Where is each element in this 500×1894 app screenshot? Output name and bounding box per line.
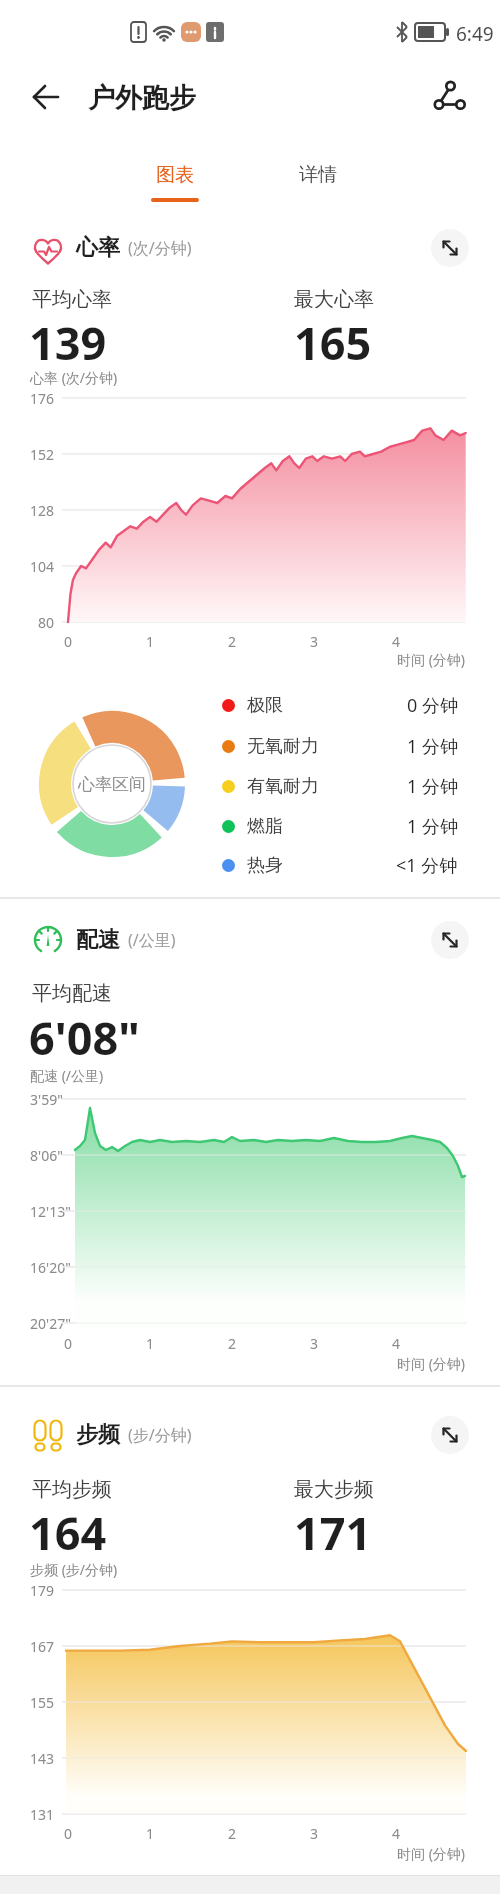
- staticText: 4: [392, 1334, 401, 1353]
- staticText: 176: [30, 389, 55, 408]
- staticText: 配速: [76, 926, 120, 954]
- staticText: 155: [30, 1693, 55, 1712]
- staticText: 6:49: [456, 21, 494, 47]
- staticText: 有氧耐力: [247, 775, 319, 798]
- staticText: 0: [64, 1334, 73, 1353]
- staticText: 时间 (分钟): [397, 1844, 466, 1863]
- staticText: (步/分钟): [128, 1424, 192, 1446]
- staticText: 4: [392, 1824, 401, 1843]
- staticText: 1: [146, 1334, 155, 1353]
- staticText: 0: [64, 1824, 73, 1843]
- staticText: <1 分钟: [396, 853, 458, 878]
- staticText: 步频 (步/分钟): [30, 1560, 118, 1579]
- staticText: 1 分钟: [407, 814, 458, 839]
- staticText: 1: [146, 632, 155, 651]
- staticText: (次/分钟): [128, 237, 192, 259]
- staticText: 详情: [299, 163, 337, 187]
- staticText: 139: [29, 312, 107, 373]
- staticText: 步频: [76, 1421, 120, 1449]
- staticText: 心率: [76, 234, 120, 262]
- staticText: 时间 (分钟): [397, 1354, 466, 1373]
- staticText: 104: [30, 557, 55, 576]
- staticText: (/公里): [128, 929, 176, 951]
- staticText: 165: [294, 312, 372, 373]
- staticText: 3'59": [30, 1090, 63, 1109]
- staticText: 167: [30, 1637, 55, 1656]
- button[interactable]: [431, 229, 469, 267]
- staticText: 心率区间: [78, 774, 146, 795]
- button[interactable]: [428, 76, 472, 120]
- button[interactable]: 热身: [222, 851, 458, 879]
- staticText: 152: [30, 445, 55, 464]
- staticText: 1: [146, 1824, 155, 1843]
- staticText: 平均步频: [32, 1477, 112, 1502]
- staticText: 心率 (次/分钟): [30, 368, 118, 387]
- staticText: 平均配速: [32, 981, 112, 1006]
- staticText: 131: [30, 1805, 55, 1824]
- staticText: 16'20": [30, 1258, 71, 1277]
- button[interactable]: 无氧耐力: [222, 732, 458, 760]
- button[interactable]: 极限: [222, 691, 458, 719]
- staticText: 171: [294, 1502, 372, 1563]
- staticText: 最大心率: [294, 287, 374, 312]
- staticText: 4: [392, 632, 401, 651]
- staticText: 3: [310, 1334, 319, 1353]
- staticText: 2: [228, 1334, 237, 1353]
- staticText: 燃脂: [247, 815, 283, 838]
- staticText: 20'27": [30, 1314, 71, 1333]
- staticText: 12'13": [30, 1202, 71, 1221]
- staticText: 时间 (分钟): [397, 650, 466, 669]
- staticText: 6'08": [29, 1007, 140, 1068]
- staticText: 143: [30, 1749, 55, 1768]
- staticText: 1 分钟: [407, 734, 458, 759]
- staticText: 8'06": [30, 1146, 63, 1165]
- button[interactable]: [431, 1416, 469, 1454]
- staticText: 平均心率: [32, 287, 112, 312]
- staticText: 2: [228, 632, 237, 651]
- button[interactable]: 燃脂: [222, 812, 458, 840]
- staticText: 0 分钟: [407, 693, 458, 718]
- staticText: 0: [64, 632, 73, 651]
- staticText: 3: [310, 632, 319, 651]
- staticText: 1 分钟: [407, 774, 458, 799]
- button[interactable]: 图表: [125, 160, 225, 204]
- staticText: 热身: [247, 854, 283, 877]
- staticText: 户外跑步: [88, 81, 196, 115]
- button[interactable]: [431, 921, 469, 959]
- staticText: 3: [310, 1824, 319, 1843]
- staticText: 179: [30, 1581, 55, 1600]
- button[interactable]: [24, 76, 68, 120]
- button[interactable]: 详情: [268, 160, 368, 204]
- staticText: 极限: [247, 694, 283, 717]
- staticText: 80: [38, 613, 55, 632]
- staticText: 164: [29, 1502, 107, 1563]
- staticText: 无氧耐力: [247, 735, 319, 758]
- staticText: 配速 (/公里): [30, 1066, 104, 1085]
- staticText: 2: [228, 1824, 237, 1843]
- staticText: 图表: [156, 163, 194, 187]
- staticText: 最大步频: [294, 1477, 374, 1502]
- button[interactable]: 有氧耐力: [222, 772, 458, 800]
- staticText: 128: [30, 501, 55, 520]
